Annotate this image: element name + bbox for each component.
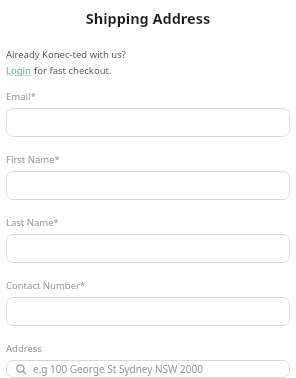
staticText: First Name* [6,153,60,166]
button[interactable] [6,108,290,137]
button[interactable]: Login [6,64,31,77]
staticText: Last Name* [6,216,59,229]
button[interactable] [6,234,290,263]
staticText: e.g 100 George St Sydney NSW 2000 [33,362,203,376]
button[interactable] [6,297,290,326]
staticText: for fast checkout. [34,64,112,77]
staticText: Login [6,64,31,77]
staticText: Already Konec-ted with us? [6,48,126,61]
staticText: Address [6,342,42,355]
button[interactable] [6,171,290,200]
staticText: Shipping Address [6,8,290,28]
button[interactable]: e.g 100 George St Sydney NSW 2000 [6,360,290,378]
staticText: Contact Number* [6,279,86,292]
staticText: Email* [6,90,36,103]
